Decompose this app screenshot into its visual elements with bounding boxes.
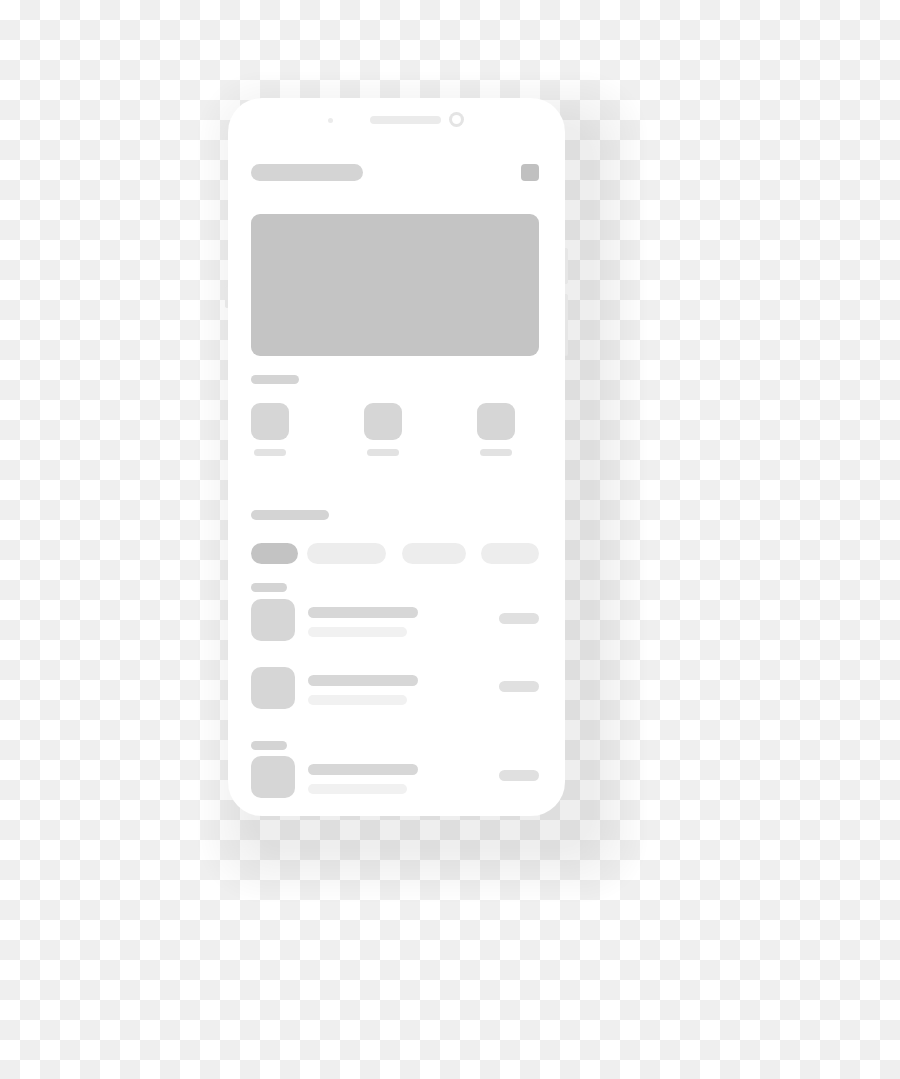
button[interactable] <box>251 599 539 643</box>
button[interactable]: Filter <box>251 543 298 564</box>
button[interactable]: Quick action <box>477 403 517 456</box>
button[interactable]: Quick action <box>251 403 291 456</box>
button[interactable]: Filter <box>481 543 539 564</box>
button[interactable] <box>251 164 363 181</box>
button[interactable] <box>251 756 539 800</box>
button[interactable]: Quick action <box>364 403 404 456</box>
button[interactable]: Filter <box>307 543 386 564</box>
button[interactable]: More options <box>521 164 539 181</box>
button[interactable]: Filter <box>402 543 466 564</box>
button[interactable] <box>251 667 539 711</box>
